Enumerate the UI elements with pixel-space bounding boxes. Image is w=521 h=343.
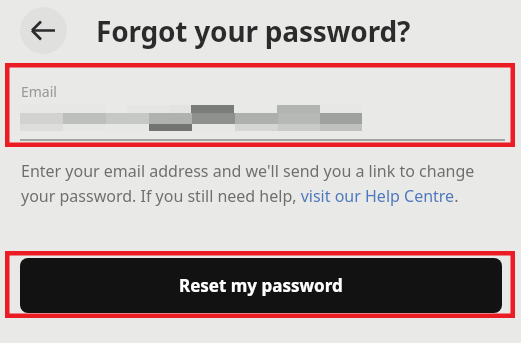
button[interactable]: Reset my password	[20, 258, 502, 313]
staticText: Reset my password	[179, 274, 343, 297]
staticText: Enter your email address and we'll send …	[21, 160, 499, 240]
staticText: Email	[21, 82, 57, 101]
button[interactable]: Back	[20, 7, 67, 54]
staticText: Forgot your password?	[96, 12, 411, 50]
